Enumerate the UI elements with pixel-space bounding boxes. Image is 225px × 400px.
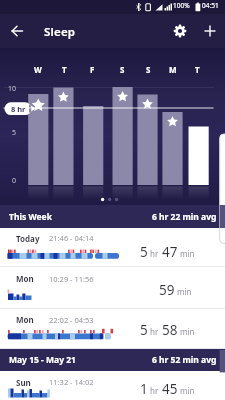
button[interactable]: May 15 - May 21 [0,349,225,371]
staticText: 6 hr 22 min avg [152,211,217,223]
button[interactable] [7,21,27,41]
staticText: 5 [12,128,17,138]
staticText: S [146,64,151,75]
staticText: hr [150,385,159,396]
button[interactable]: Sun [0,371,225,399]
staticText: min [177,286,192,297]
button[interactable]: Mon [0,267,225,309]
staticText: 5 [140,243,148,261]
staticText: Today [16,233,40,244]
staticText: 10:29 - 11:56 [49,274,94,284]
staticText: Mon [16,314,34,325]
staticText: Sleep [44,24,76,40]
button[interactable]: This Week [0,205,225,228]
staticText: 0 [12,176,17,186]
button[interactable]: Mon [0,309,225,349]
staticText: hr [150,326,159,337]
staticText: 11:32 - 14:02 [49,377,94,387]
staticText: 04:51 [202,1,219,10]
staticText: 5 [140,321,148,339]
staticText: S [120,64,125,75]
staticText: min [180,385,195,396]
staticText: T [195,64,200,75]
button[interactable]: Today [0,228,225,267]
staticText: M [169,64,177,75]
staticText: This Week [9,211,52,223]
button[interactable] [170,21,190,41]
staticText: F [90,64,95,75]
staticText: 58 [162,321,178,339]
staticText: Sun [16,377,31,388]
staticText: 47 [162,243,178,261]
button[interactable] [200,21,220,41]
staticText: 59 [159,281,175,299]
staticText: hr [150,248,159,259]
staticText: W [34,64,42,75]
staticText: min [180,326,195,337]
staticText: 1 [140,380,148,398]
staticText: 6 hr 52 min avg [152,354,217,366]
staticText: Mon [16,273,34,284]
staticText: T [62,64,67,75]
staticText: 45 [162,380,178,398]
staticText: 22:02 - 04:53 [49,315,94,325]
staticText: 10 [8,84,17,94]
staticText: May 15 - May 21 [9,354,76,366]
staticText: 100% [173,1,190,10]
staticText: 21:46 - 04:14 [49,233,94,243]
staticText: 8 hr [11,104,26,114]
staticText: min [180,248,195,259]
button[interactable]: W [0,48,225,205]
